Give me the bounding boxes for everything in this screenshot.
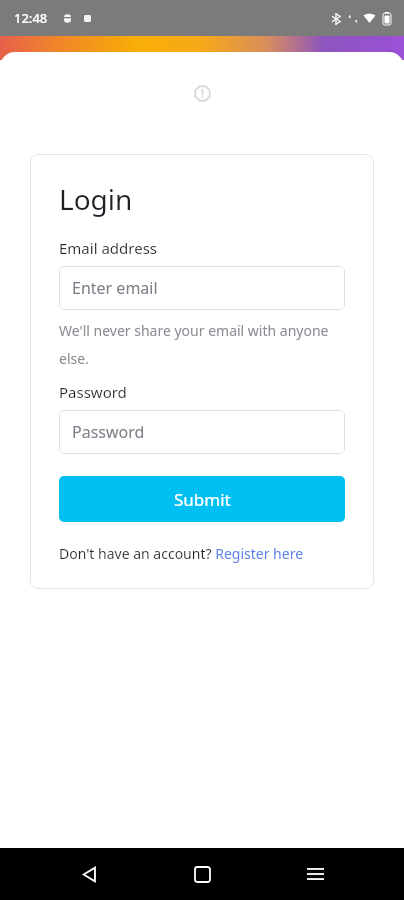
staticText: Password bbox=[59, 382, 127, 402]
staticText: Password bbox=[72, 421, 145, 443]
staticText: Submit bbox=[174, 488, 231, 511]
button[interactable]: Don't have an account? Register here bbox=[59, 544, 304, 563]
staticText: We'll never share your email with anyone… bbox=[59, 321, 345, 368]
staticText: Email address bbox=[59, 238, 158, 258]
button[interactable]: Back bbox=[65, 850, 113, 898]
staticText: Enter email bbox=[72, 277, 158, 299]
staticText: Login bbox=[59, 180, 133, 218]
button[interactable]: Home bbox=[178, 850, 226, 898]
button[interactable]: Submit bbox=[59, 476, 345, 522]
button[interactable]: Recent apps bbox=[291, 850, 339, 898]
button[interactable]: Information bbox=[189, 80, 215, 106]
button[interactable]: Password bbox=[59, 410, 345, 454]
staticText: 12:48 bbox=[14, 9, 48, 27]
staticText: Don't have an account? Register here bbox=[59, 544, 304, 563]
button[interactable]: Enter email bbox=[59, 266, 345, 310]
